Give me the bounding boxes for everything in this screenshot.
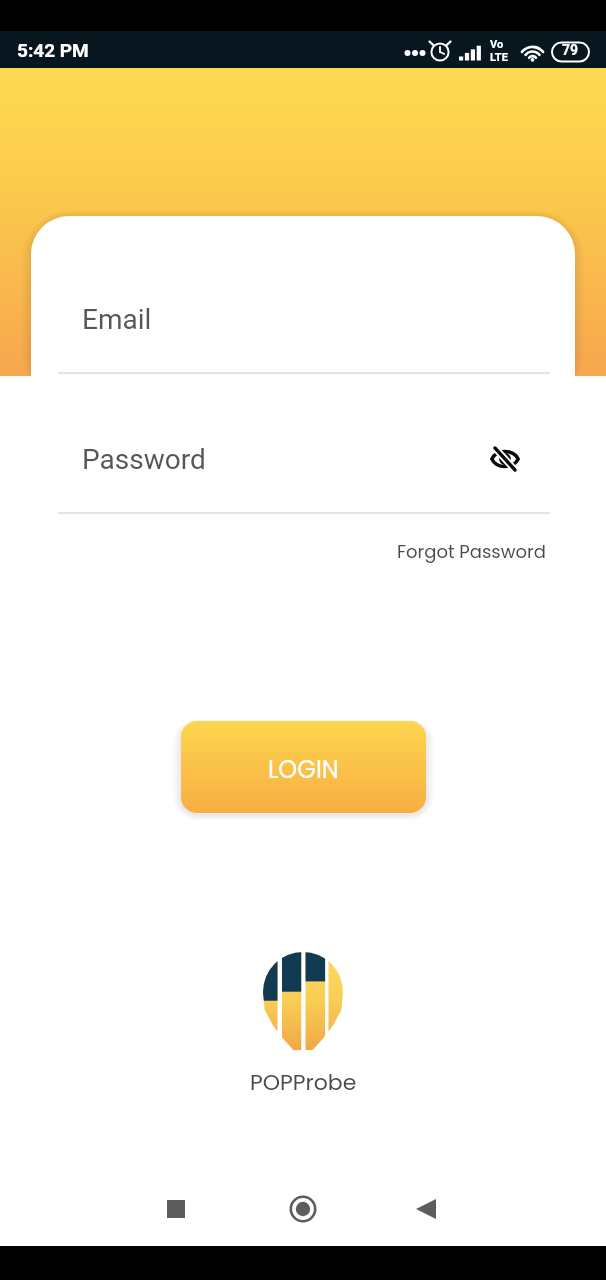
button[interactable]: Forgot Password: [397, 529, 546, 573]
button[interactable]: Recents: [152, 1185, 200, 1233]
button[interactable]: Password: [58, 428, 550, 513]
staticText: LTE: [490, 51, 508, 64]
staticText: 5:42 PM: [17, 39, 89, 61]
button[interactable]: Home: [279, 1185, 327, 1233]
staticText: 79: [562, 42, 579, 58]
staticText: Password: [82, 443, 206, 476]
staticText: Forgot Password: [397, 539, 546, 564]
button[interactable]: LOGIN: [181, 721, 426, 813]
button[interactable]: Back: [402, 1185, 450, 1233]
button[interactable]: Email: [58, 288, 550, 373]
staticText: Email: [82, 303, 152, 336]
staticText: LOGIN: [268, 753, 339, 787]
button[interactable]: Show password: [481, 435, 529, 483]
staticText: POPProbe: [250, 1067, 357, 1098]
staticText: Vo: [490, 38, 504, 51]
